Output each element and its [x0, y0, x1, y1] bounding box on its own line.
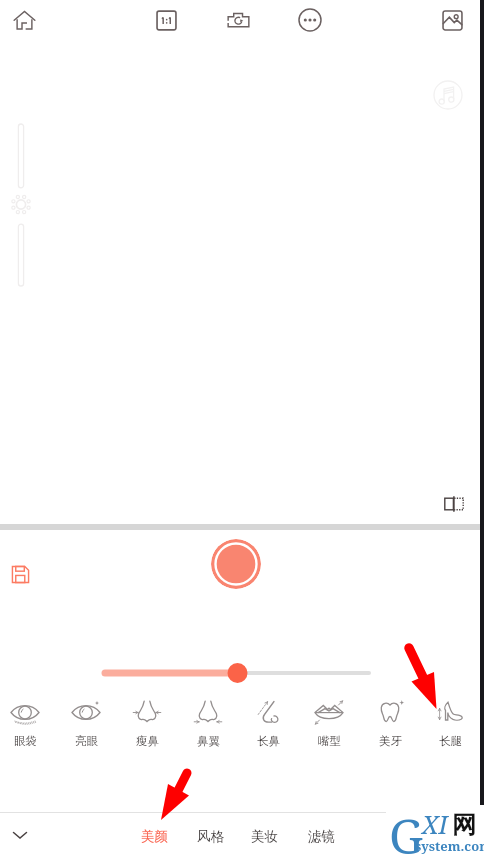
button[interactable]: 美妆: [244, 818, 284, 854]
button[interactable]: Mirror: [434, 484, 474, 524]
button[interactable]: Home: [4, 0, 44, 40]
button[interactable]: 鼻翼: [178, 698, 238, 752]
button[interactable]: 长鼻: [238, 698, 298, 752]
button[interactable]: 眼袋: [0, 698, 55, 752]
staticText: 美牙: [379, 734, 402, 748]
staticText: 美颜: [141, 828, 168, 845]
button[interactable]: 美牙: [360, 698, 420, 752]
staticText: 眼袋: [14, 734, 37, 748]
staticText: 鼻翼: [197, 734, 220, 748]
button[interactable]: Intensity slider: [95, 661, 379, 685]
button[interactable]: Gallery: [432, 0, 472, 40]
staticText: 滤镜: [308, 828, 335, 845]
staticText: 瘦鼻: [136, 734, 159, 748]
button[interactable]: 滤镜: [301, 818, 341, 854]
button[interactable]: Music: [428, 75, 468, 115]
button[interactable]: Switch camera: [218, 0, 258, 40]
staticText: system.com: [415, 837, 484, 854]
button[interactable]: 嘴型: [299, 698, 359, 752]
button[interactable]: More options: [290, 0, 330, 40]
button[interactable]: 长腿: [420, 698, 480, 752]
button[interactable]: 风格: [190, 818, 230, 854]
staticText: 嘴型: [318, 734, 341, 748]
button[interactable]: 瘦鼻: [117, 698, 177, 752]
staticText: 网: [452, 810, 476, 840]
staticText: G: [389, 803, 424, 854]
staticText: 长鼻: [257, 734, 280, 748]
button[interactable]: 亮眼: [56, 698, 116, 752]
staticText: 风格: [197, 828, 224, 845]
staticText: 长腿: [439, 734, 462, 748]
button[interactable]: Aspect ratio 1:1: [146, 0, 186, 40]
staticText: XI: [422, 807, 448, 841]
button[interactable]: 美颜: [134, 818, 174, 854]
button[interactable]: Collapse: [0, 815, 40, 854]
button[interactable]: Save: [0, 554, 40, 594]
staticText: 美妆: [251, 828, 278, 845]
button[interactable]: Shutter: [211, 539, 261, 589]
staticText: 亮眼: [75, 734, 98, 748]
